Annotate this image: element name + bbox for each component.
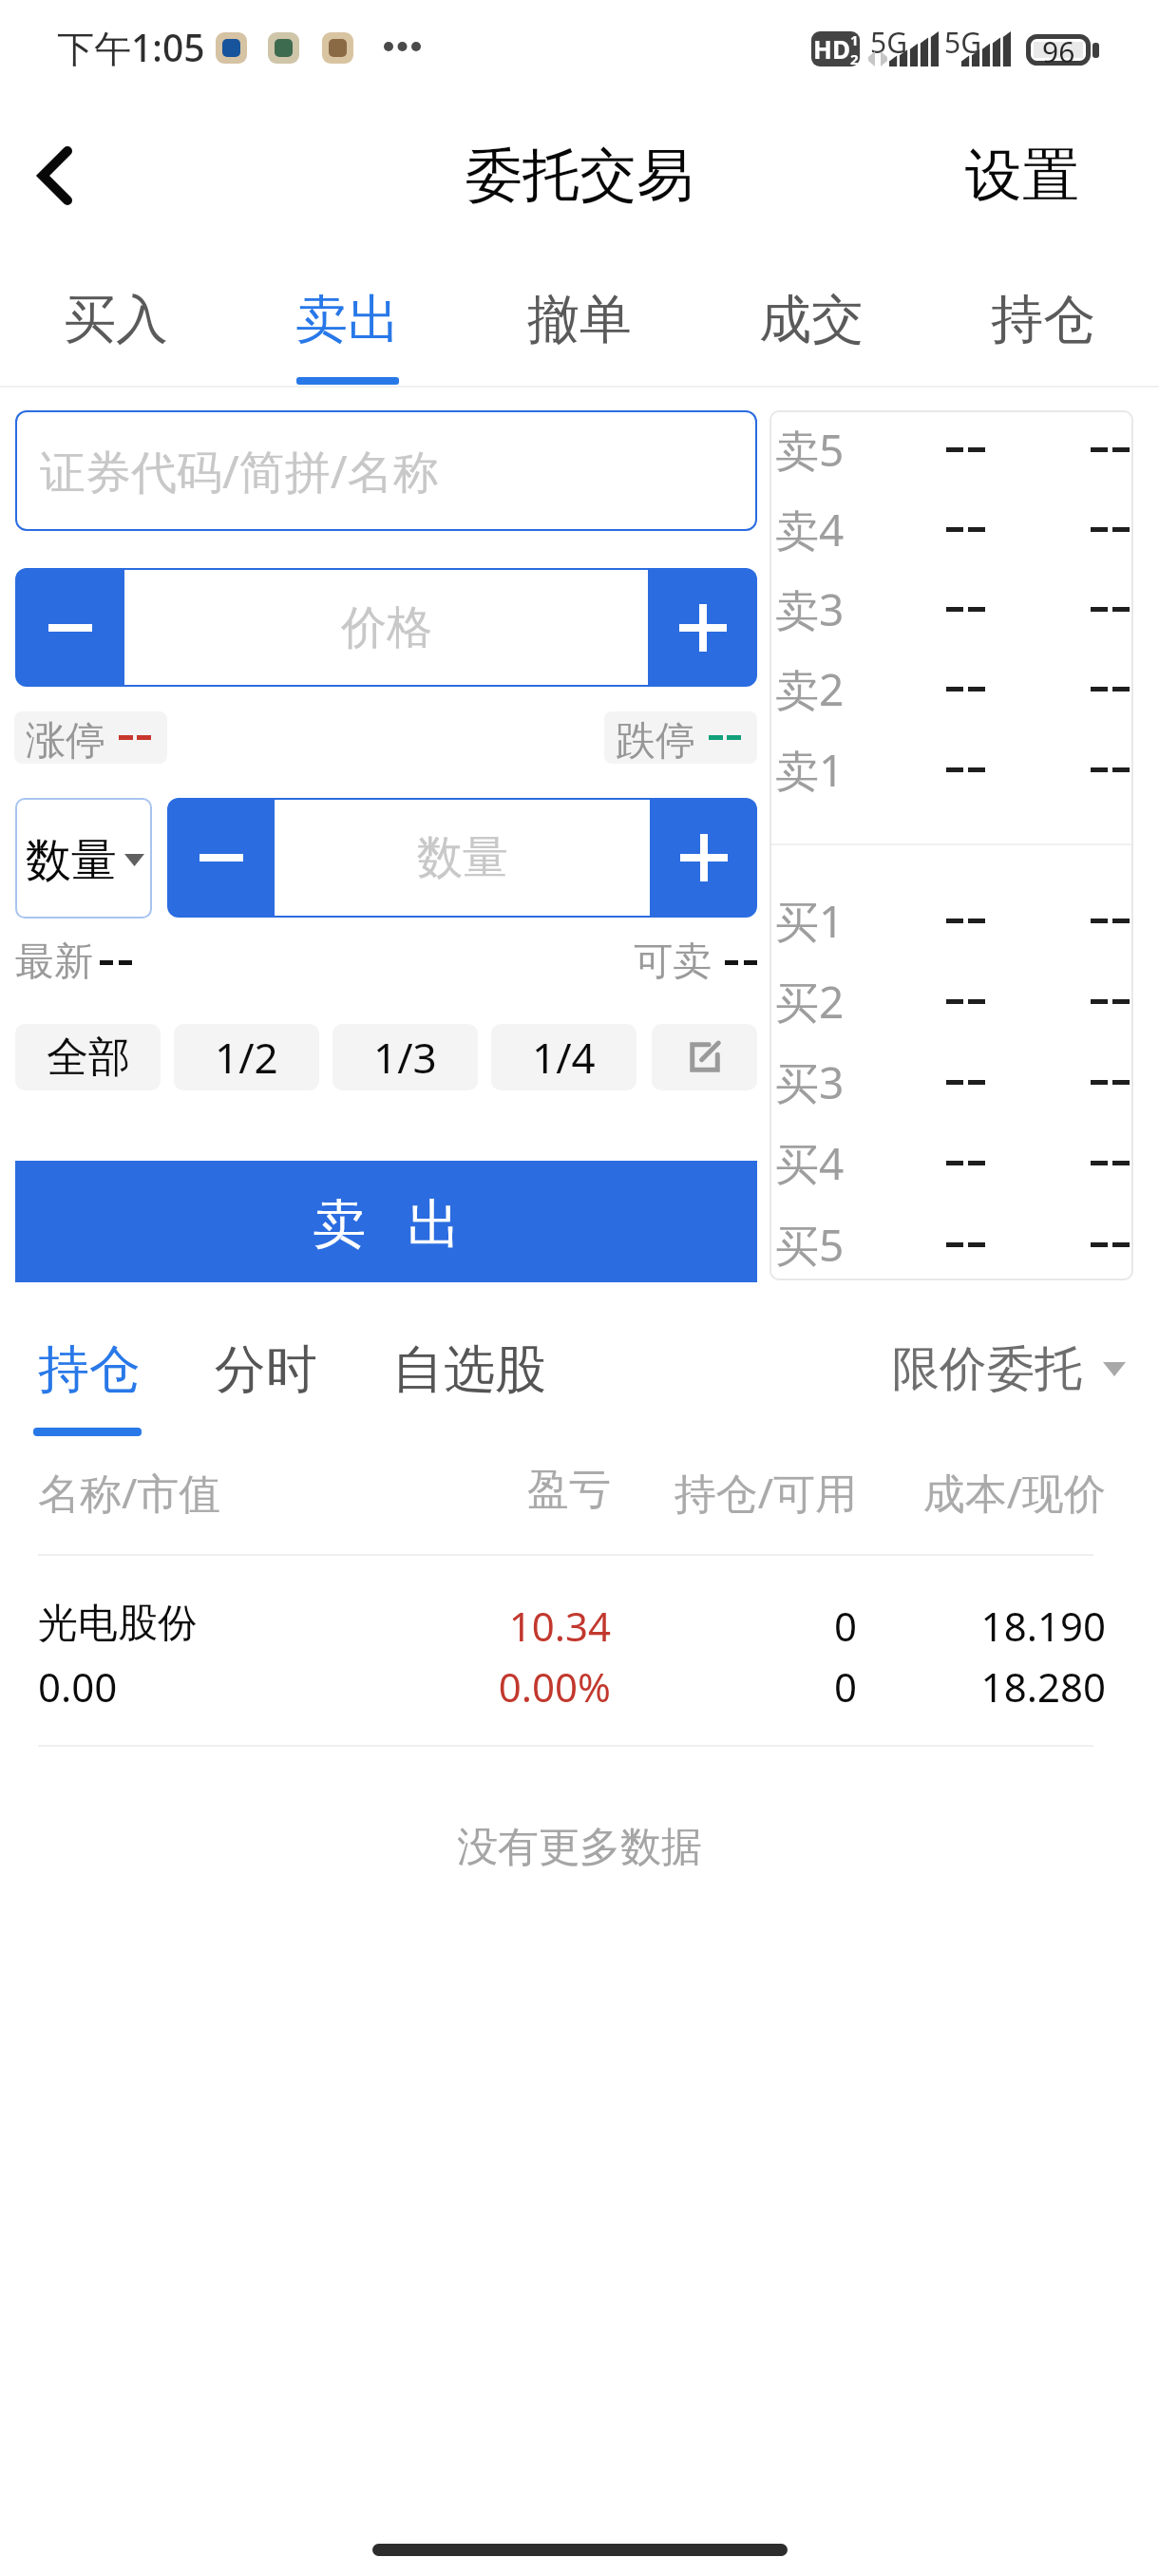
staticText: 光电股份: [38, 1599, 198, 1649]
staticText: 卖3: [775, 579, 845, 639]
button[interactable]: 1/3: [332, 1024, 478, 1090]
staticText: 1/4: [532, 1029, 596, 1086]
staticText: 18.190: [857, 1599, 1106, 1653]
staticText: 撤单: [527, 287, 632, 352]
staticText: 数量: [26, 832, 117, 889]
staticText: 分时: [215, 1337, 317, 1402]
staticText: 5G: [944, 23, 981, 62]
staticText: 持仓: [991, 287, 1095, 352]
staticText: 证券代码/简拼/名称: [40, 440, 439, 502]
button[interactable]: 持仓: [927, 247, 1159, 386]
staticText: 18.280: [857, 1659, 1106, 1714]
staticText: 价格: [341, 599, 432, 656]
staticText: 0: [611, 1659, 857, 1714]
staticText: 10.34: [408, 1599, 611, 1653]
button[interactable]: 设置: [950, 128, 1094, 223]
staticText: 买2: [775, 972, 845, 1032]
button[interactable]: 买3: [771, 1042, 1131, 1122]
staticText: 2: [850, 49, 859, 66]
staticText: 买5: [775, 1215, 845, 1275]
button[interactable]: 1/2: [174, 1024, 319, 1090]
staticText: 持仓: [38, 1337, 141, 1402]
staticText: 自选股: [392, 1337, 546, 1402]
button[interactable]: Edit order: [652, 1024, 757, 1090]
button[interactable]: 跌停: [604, 711, 757, 764]
button[interactable]: Decrease 数量: [167, 798, 275, 918]
staticText: 成交: [759, 287, 864, 352]
staticText: 5G: [870, 23, 907, 62]
button[interactable]: 自选股: [392, 1337, 546, 1402]
staticText: 限价委托: [892, 1339, 1082, 1399]
button[interactable]: Increase 价格: [648, 568, 757, 687]
staticText: 96: [1042, 32, 1075, 64]
button[interactable]: 卖 出: [15, 1161, 757, 1282]
button[interactable]: 卖1: [771, 729, 1131, 809]
staticText: 成本/现价: [857, 1464, 1106, 1521]
staticText: 卖出: [295, 287, 400, 352]
staticText: 卖4: [775, 500, 845, 559]
staticText: 买3: [775, 1052, 845, 1112]
staticText: 没有更多数据: [0, 1822, 1159, 1873]
button[interactable]: 买入: [0, 247, 232, 386]
button[interactable]: 光电股份: [0, 1577, 1159, 1738]
staticText: 卖 出: [313, 1185, 461, 1258]
button[interactable]: 卖出: [232, 247, 464, 386]
button[interactable]: 1/4: [491, 1024, 636, 1090]
staticText: 可卖: [634, 938, 712, 987]
staticText: 0.00: [38, 1659, 118, 1714]
button[interactable]: 涨停: [14, 711, 167, 764]
staticText: 委托交易: [465, 140, 693, 212]
button[interactable]: 撤单: [464, 247, 695, 386]
button[interactable]: 限价委托: [884, 1334, 1133, 1405]
staticText: 买入: [64, 287, 168, 352]
button[interactable]: 持仓: [38, 1337, 141, 1402]
staticText: 1/3: [373, 1029, 437, 1086]
button[interactable]: 成交: [695, 247, 927, 386]
staticText: 1/2: [215, 1029, 278, 1086]
button[interactable]: 买5: [771, 1204, 1131, 1284]
button[interactable]: 买4: [771, 1123, 1131, 1203]
staticText: 买4: [775, 1133, 845, 1193]
staticText: 持仓/可用: [611, 1464, 857, 1521]
staticText: 卖1: [775, 740, 845, 800]
button[interactable]: 卖3: [771, 569, 1131, 649]
button[interactable]: 数量: [15, 798, 152, 919]
button[interactable]: 卖5: [771, 409, 1131, 489]
staticText: 买1: [775, 891, 845, 951]
staticText: 下午1:05: [57, 22, 205, 72]
staticText: 名称/市值: [38, 1464, 221, 1521]
button[interactable]: 买1: [771, 881, 1131, 960]
staticText: 盈亏: [408, 1464, 611, 1516]
button[interactable]: 分时: [215, 1337, 317, 1402]
staticText: 卖5: [775, 420, 845, 480]
staticText: 最新: [15, 938, 93, 987]
button[interactable]: Increase 数量: [650, 798, 757, 918]
button[interactable]: 全部: [15, 1024, 161, 1090]
button[interactable]: 买2: [771, 961, 1131, 1041]
button[interactable]: 卖2: [771, 649, 1131, 729]
button[interactable]: 证券代码/简拼/名称: [15, 410, 757, 531]
staticText: 1: [850, 31, 859, 49]
button[interactable]: 卖4: [771, 489, 1131, 569]
staticText: 设置: [965, 140, 1079, 212]
staticText: 全部: [47, 1032, 130, 1084]
button[interactable]: Decrease 价格: [15, 568, 124, 687]
staticText: 卖2: [775, 659, 845, 719]
staticText: 0.00%: [408, 1659, 611, 1714]
staticText: 跌停: [616, 716, 695, 764]
staticText: HD: [813, 32, 850, 66]
staticText: 0: [611, 1599, 857, 1653]
staticText: 涨停: [26, 716, 105, 764]
staticText: 数量: [417, 829, 508, 886]
button[interactable]: Back: [9, 130, 101, 221]
